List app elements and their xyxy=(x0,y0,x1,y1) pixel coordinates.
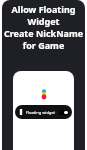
staticText: Floating widget xyxy=(26,110,56,115)
button[interactable]: Floating widget xyxy=(15,105,72,119)
staticText: Create NickName for Game xyxy=(2,27,85,51)
button[interactable]: Toggle floating widget xyxy=(59,110,69,115)
staticText: Allow Floating Widget xyxy=(2,3,85,27)
